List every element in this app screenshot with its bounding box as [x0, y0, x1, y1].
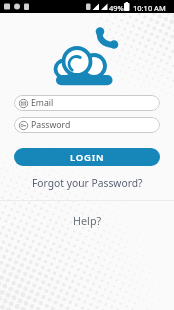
- button[interactable]: Forgot your Password?: [32, 176, 143, 190]
- button[interactable]: LOGIN: [14, 148, 160, 166]
- staticText: LOGIN: [70, 151, 105, 164]
- staticText: Password: [31, 119, 71, 131]
- button[interactable]: Email: [14, 95, 160, 111]
- button[interactable]: Help?: [73, 213, 102, 228]
- staticText: 10:10 AM: [133, 3, 166, 13]
- staticText: 49%: [109, 3, 124, 13]
- button[interactable]: Password: [14, 117, 160, 133]
- staticText: Email: [31, 97, 54, 109]
